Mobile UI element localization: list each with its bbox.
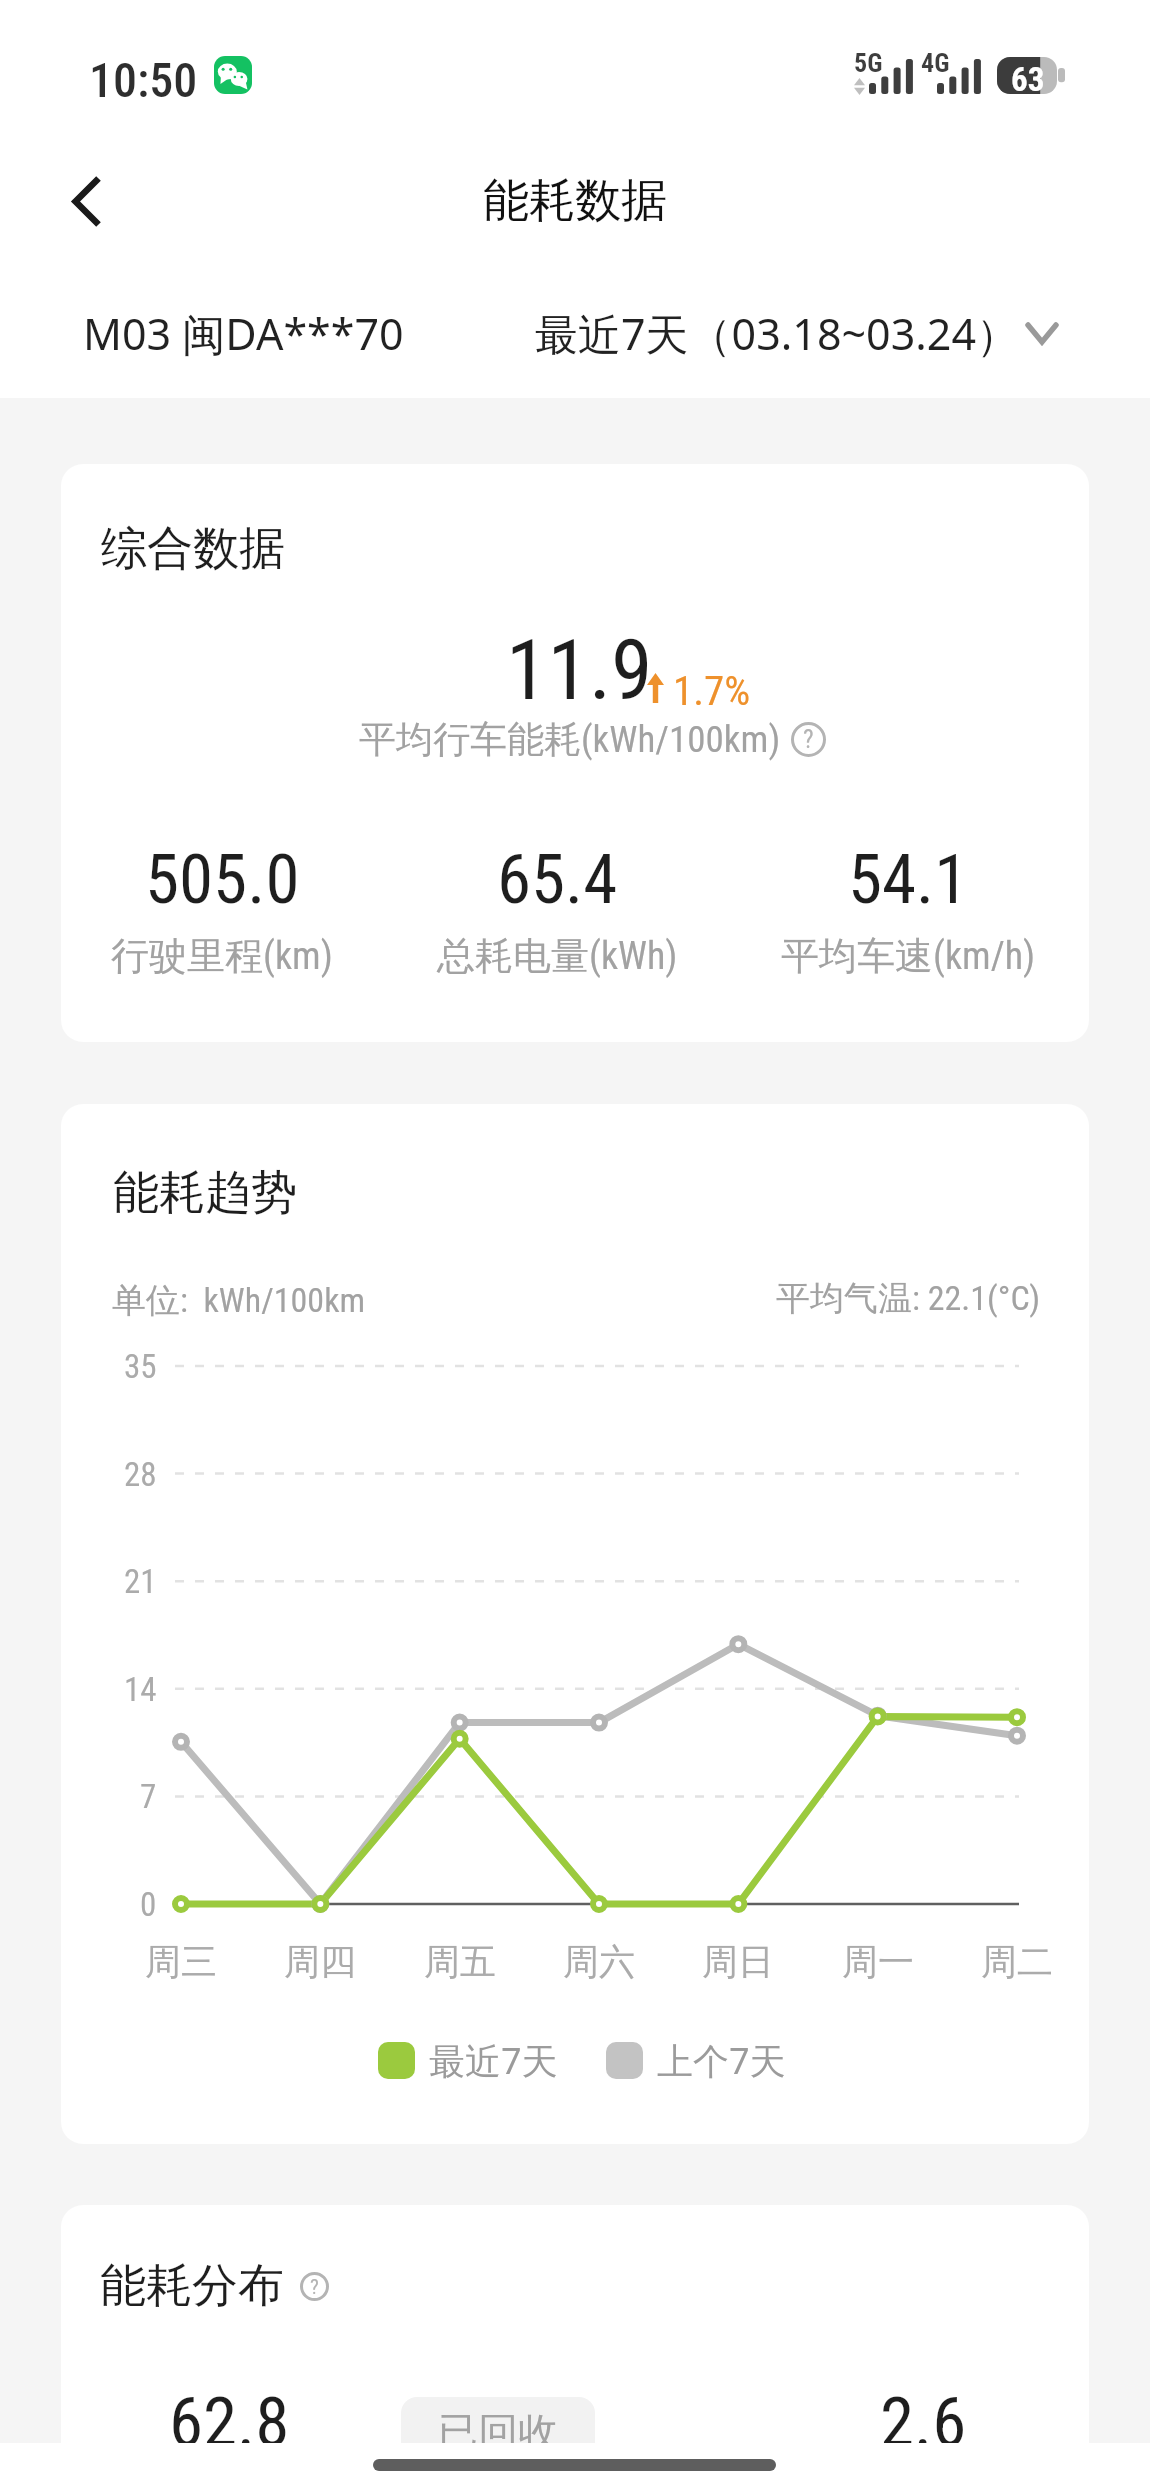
staticText: 周四 xyxy=(284,1939,356,1984)
staticText: 综合数据 xyxy=(101,520,285,578)
staticText: 65.4 xyxy=(497,839,618,920)
staticText: 10:50 xyxy=(89,52,198,108)
staticText: 14 xyxy=(124,1670,157,1709)
staticText: 周一 xyxy=(842,1939,914,1984)
staticText: 最近7天 xyxy=(429,2036,558,2085)
staticText: 1.7% xyxy=(673,667,751,715)
button[interactable]: 最近7天（03.18~03.24） xyxy=(517,288,1077,379)
staticText: 周六 xyxy=(563,1939,635,1984)
staticText: 周二 xyxy=(981,1939,1053,1984)
staticText: 505.0 xyxy=(145,839,300,920)
button[interactable]: Back xyxy=(36,151,136,251)
staticText: 35 xyxy=(124,1347,157,1386)
staticText: 28 xyxy=(124,1455,157,1494)
staticText: ? xyxy=(310,2275,319,2299)
staticText: 行驶里程(km) xyxy=(111,932,333,980)
staticText: 周三 xyxy=(145,1939,217,1984)
staticText: 62.8 xyxy=(169,2382,290,2463)
staticText: 54.1 xyxy=(848,839,969,920)
staticText: 能耗分布 xyxy=(100,2257,284,2315)
staticText: 能耗数据 xyxy=(483,172,667,230)
staticText: 周五 xyxy=(424,1939,496,1984)
staticText: 5G xyxy=(854,48,883,78)
staticText: 4G xyxy=(921,48,950,78)
staticText: 平均车速(km/h) xyxy=(781,932,1036,980)
button[interactable]: M03 闽DA***70 xyxy=(63,288,424,379)
staticText: 能耗趋势 xyxy=(113,1164,297,1222)
staticText: 11.9 xyxy=(506,621,653,719)
staticText: 总耗电量(kWh) xyxy=(437,932,678,980)
staticText: 21 xyxy=(124,1562,157,1601)
staticText: 已回收 xyxy=(438,2407,558,2457)
staticText: 周日 xyxy=(702,1939,774,1984)
staticText: 2.6 xyxy=(880,2382,967,2463)
staticText: 上个7天 xyxy=(657,2036,786,2085)
staticText: ? xyxy=(803,725,814,755)
staticText: 单位: kWh/100km xyxy=(112,1279,366,1322)
staticText: 平均行车能耗(kWh/100km) xyxy=(359,716,781,763)
staticText: 最近7天（03.18~03.24） xyxy=(535,304,1020,363)
staticText: 7 xyxy=(140,1777,157,1816)
staticText: 63 xyxy=(1011,60,1045,97)
staticText: 平均气温: 22.1(°C) xyxy=(776,1277,1041,1320)
staticText: 0 xyxy=(140,1885,157,1924)
